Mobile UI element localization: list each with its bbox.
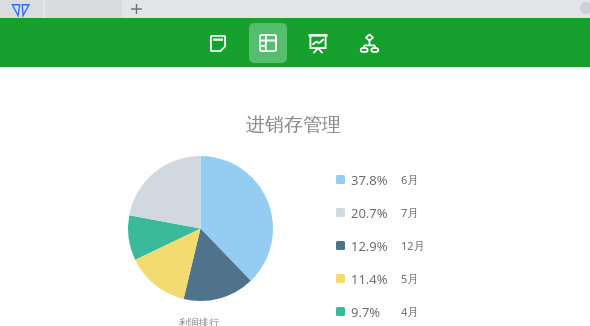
button[interactable]: Spreadsheet: [249, 23, 287, 63]
button[interactable]: [0, 0, 43, 18]
staticText: 7月: [401, 205, 419, 220]
button[interactable]: Writer: [199, 23, 237, 63]
staticText: 12.9%: [351, 237, 388, 255]
button[interactable]: Account: [580, 2, 590, 14]
button[interactable]: WPS: [12, 4, 29, 16]
button[interactable]: 12.9%: [336, 229, 436, 262]
staticText: 进销存管理: [246, 113, 341, 137]
button[interactable]: 20.7%: [336, 196, 436, 229]
button[interactable]: New tab: [131, 4, 142, 14]
staticText: 5月: [401, 271, 419, 286]
staticText: 6月: [401, 172, 419, 187]
staticText: 20.7%: [351, 204, 388, 222]
staticText: 利润排行: [179, 316, 219, 326]
staticText: 12月: [401, 238, 425, 253]
button[interactable]: Flowchart: [350, 23, 388, 63]
staticText: 4月: [401, 304, 419, 319]
button[interactable]: Presentation: [299, 23, 337, 63]
button[interactable]: 11.4%: [336, 262, 436, 295]
button[interactable]: 9.7%: [336, 295, 436, 326]
staticText: 9.7%: [351, 303, 381, 321]
button[interactable]: 37.8%: [336, 163, 436, 196]
staticText: 37.8%: [351, 171, 388, 189]
staticText: 11.4%: [351, 270, 388, 288]
